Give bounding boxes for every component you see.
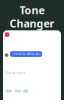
staticText: Changer: [9, 16, 54, 30]
staticText: Formal: [6, 90, 11, 92]
staticText: i need to talk to you: [12, 52, 41, 56]
staticText: Polite: [24, 90, 27, 92]
button[interactable]: Formal: [5, 89, 13, 93]
staticText: Tone: [19, 3, 44, 17]
staticText: Casual: [15, 90, 20, 92]
button[interactable]: Casual: [14, 89, 22, 93]
staticText: Choose a tone: [5, 71, 26, 75]
button[interactable]: Polite: [23, 89, 29, 93]
